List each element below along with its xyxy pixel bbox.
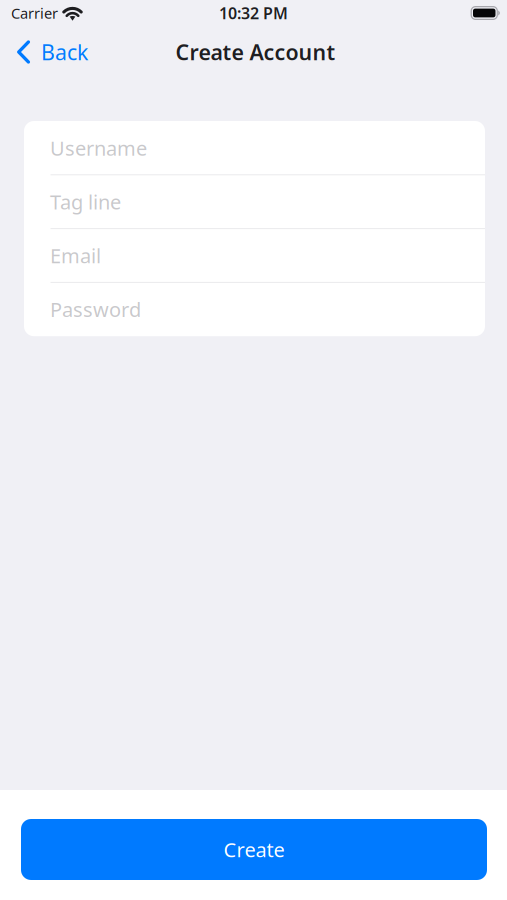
button[interactable]: Username	[24, 121, 485, 175]
button[interactable]: Create	[21, 819, 487, 880]
staticText: Create	[223, 836, 284, 863]
button[interactable]: Tag line	[24, 175, 485, 229]
button[interactable]: Password	[24, 282, 485, 336]
button[interactable]: Back	[0, 26, 100, 70]
staticText: Create Account	[175, 38, 335, 66]
staticText: 10:32 PM	[219, 2, 288, 24]
button[interactable]: Email	[24, 229, 485, 282]
staticText: Email	[50, 242, 101, 269]
staticText: Password	[50, 296, 141, 323]
staticText: Carrier	[11, 3, 58, 23]
staticText: Tag line	[50, 188, 121, 215]
staticText: Back	[41, 38, 88, 66]
staticText: Username	[50, 135, 147, 161]
